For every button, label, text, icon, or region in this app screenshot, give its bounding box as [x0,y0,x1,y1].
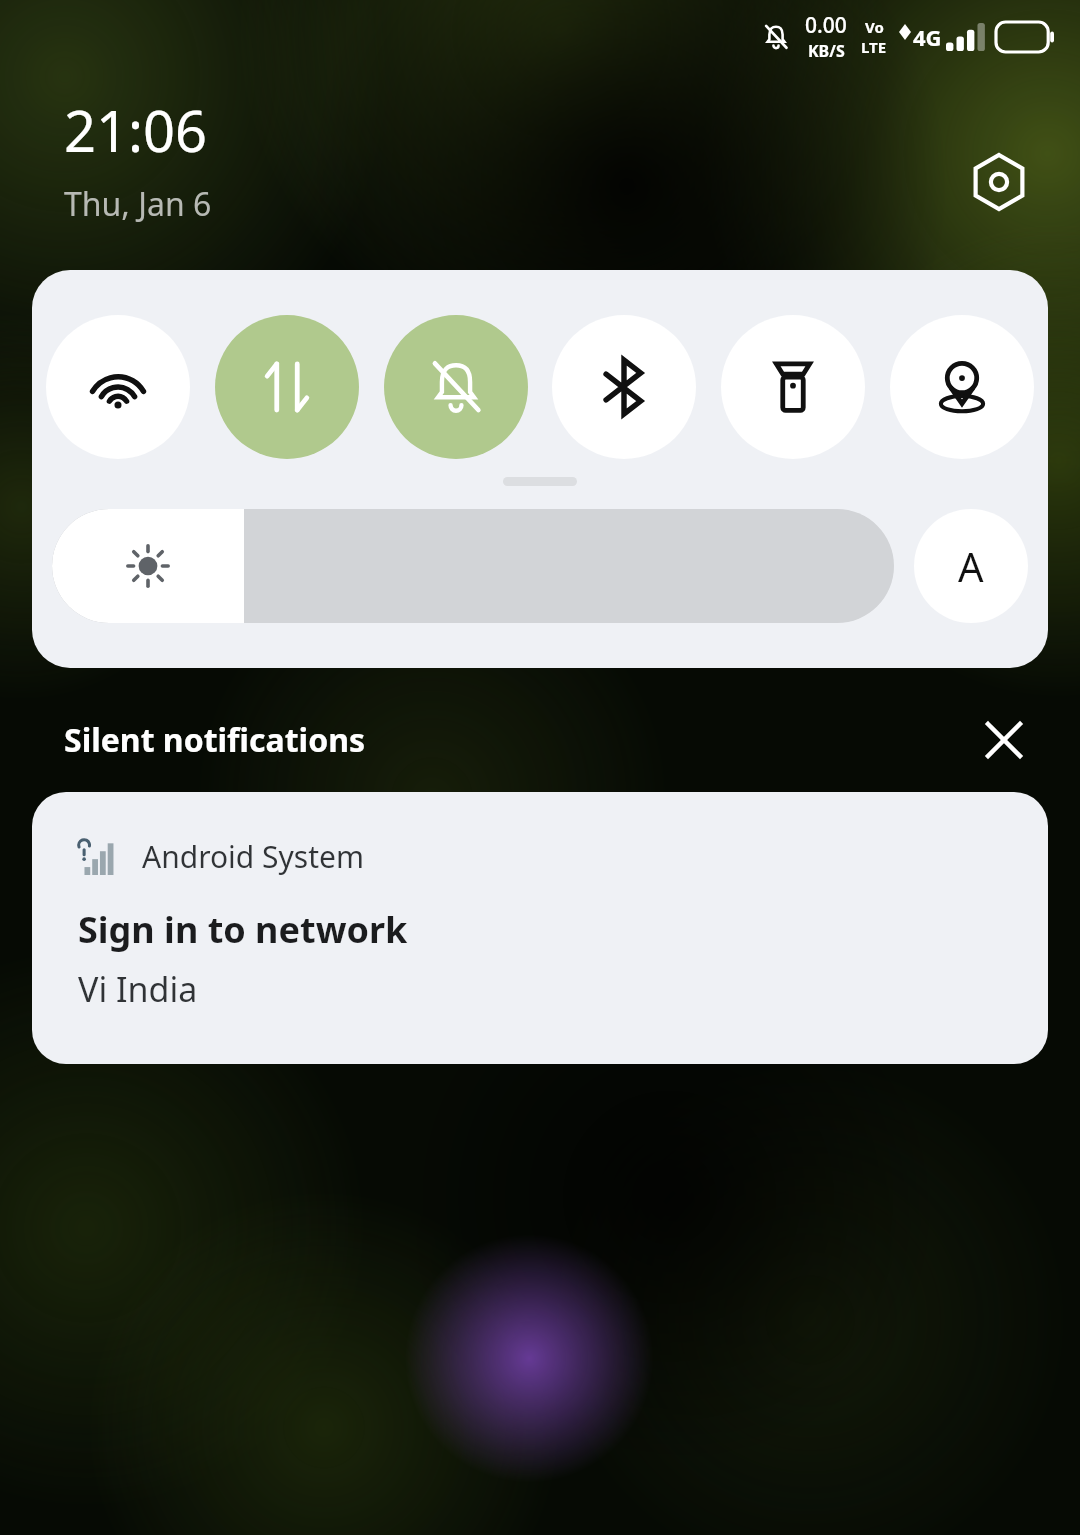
button[interactable]: Clear all notifications [974,710,1034,770]
staticText: Android System [142,836,365,877]
staticText: 4G [913,22,942,52]
staticText: Silent notifications [64,718,366,762]
staticText: LTE [861,37,887,57]
button[interactable]: Silent mode [384,315,528,459]
staticText: Sign in to network [78,905,408,954]
button[interactable]: Location [890,315,1034,459]
button[interactable]: Android System [32,792,1048,1064]
button[interactable]: Flashlight [721,315,865,459]
staticText: 0.00 [805,11,847,40]
staticText: Vi India [78,966,198,1012]
button[interactable]: Mobile data [215,315,359,459]
button[interactable]: Settings [966,149,1032,215]
staticText: Vo [865,17,884,37]
button[interactable]: Bluetooth [552,315,696,459]
staticText: KB/S [808,40,845,62]
staticText: Thu, Jan 6 [64,182,212,226]
button[interactable]: A [914,509,1028,623]
staticText: 21:06 [64,92,208,168]
button[interactable]: Brightness [52,509,894,623]
staticText: A [958,539,984,593]
button[interactable]: Wi-Fi [46,315,190,459]
